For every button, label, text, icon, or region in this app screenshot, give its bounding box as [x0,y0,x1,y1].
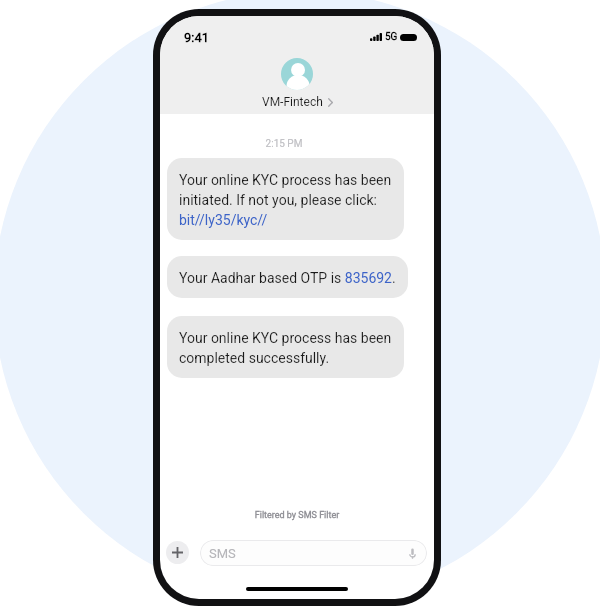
staticText: 9:41 [184,30,210,45]
staticText: VM-Fintech [262,95,323,109]
staticText: 2:15 PM [160,138,421,150]
button[interactable]: VM-Fintech [160,58,434,109]
staticText: Your online KYC process has been initiat… [179,169,392,229]
button[interactable]: Add attachment [166,541,189,564]
button[interactable]: Your Aadhar based OTP is 835692. [167,256,408,298]
button[interactable]: SMS [200,540,427,566]
staticText: Your Aadhar based OTP is 835692. [179,267,396,287]
button[interactable]: Your online KYC process has been initiat… [167,158,404,240]
staticText: 5G [385,31,398,43]
staticText: Filtered by SMS Filter [160,510,434,521]
button[interactable]: Voice input [408,547,417,560]
button[interactable]: Your online KYC process has been complet… [167,316,404,378]
staticText: Your online KYC process has been complet… [179,327,392,367]
staticText: SMS [209,546,236,561]
